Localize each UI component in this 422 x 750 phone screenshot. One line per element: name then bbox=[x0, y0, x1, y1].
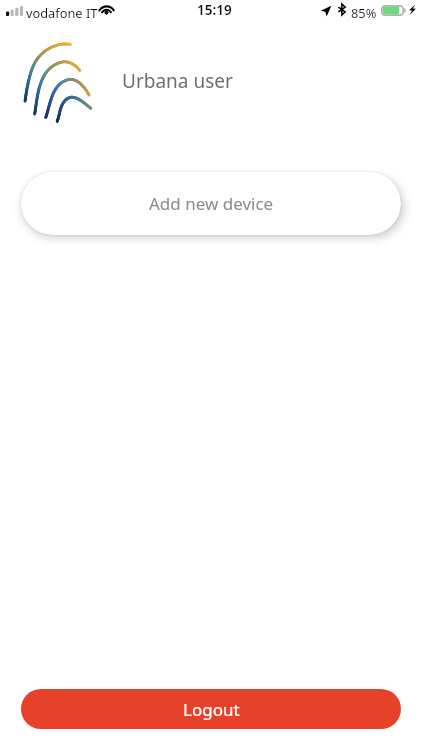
staticText: 15:19 bbox=[197, 1, 232, 19]
staticText: Urbana user bbox=[122, 68, 233, 94]
staticText: 85% bbox=[351, 4, 377, 21]
staticText: Add new device bbox=[149, 192, 274, 215]
button[interactable]: Add new device bbox=[21, 172, 401, 235]
button[interactable]: Logout bbox=[21, 689, 401, 729]
staticText: Logout bbox=[183, 698, 240, 721]
staticText: vodafone IT bbox=[26, 4, 98, 21]
